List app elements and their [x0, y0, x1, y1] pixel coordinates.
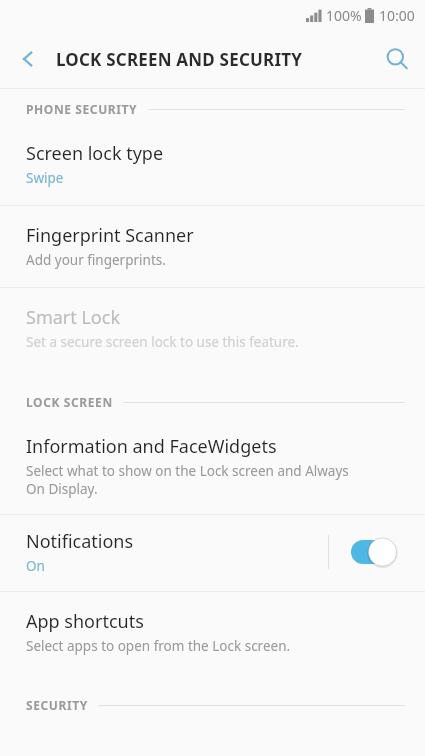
staticText: PHONE SECURITY: [26, 101, 138, 117]
staticText: Add your fingerprints.: [26, 251, 166, 269]
button[interactable]: Smart Lock: [0, 288, 425, 369]
staticText: Smart Lock: [26, 305, 120, 330]
button[interactable]: App shortcuts: [0, 592, 425, 673]
staticText: Swipe: [26, 169, 64, 187]
staticText: LOCK SCREEN: [26, 394, 113, 410]
staticText: Fingerprint Scanner: [26, 223, 194, 248]
button[interactable]: Back: [0, 30, 56, 88]
staticText: LOCK SCREEN AND SECURITY: [56, 48, 369, 71]
button[interactable]: Notifications: [0, 515, 425, 591]
staticText: SECURITY: [26, 697, 88, 713]
button[interactable]: Notifications toggle: [351, 537, 403, 567]
button[interactable]: Screen lock type: [0, 129, 425, 205]
staticText: Screen lock type: [26, 141, 164, 166]
staticText: On: [26, 557, 45, 575]
staticText: Set a secure screen lock to use this fea…: [26, 333, 299, 351]
button[interactable]: Search: [369, 30, 425, 88]
button[interactable]: Fingerprint Scanner: [0, 206, 425, 287]
staticText: Notifications: [26, 529, 134, 554]
staticText: App shortcuts: [26, 609, 144, 634]
staticText: Select apps to open from the Lock screen…: [26, 637, 291, 655]
staticText: 100%: [326, 6, 362, 25]
button[interactable]: Information and FaceWidgets: [0, 422, 425, 514]
staticText: Information and FaceWidgets: [26, 434, 277, 459]
staticText: Select what to show on the Lock screen a…: [26, 462, 349, 498]
staticText: 10:00: [379, 6, 415, 25]
